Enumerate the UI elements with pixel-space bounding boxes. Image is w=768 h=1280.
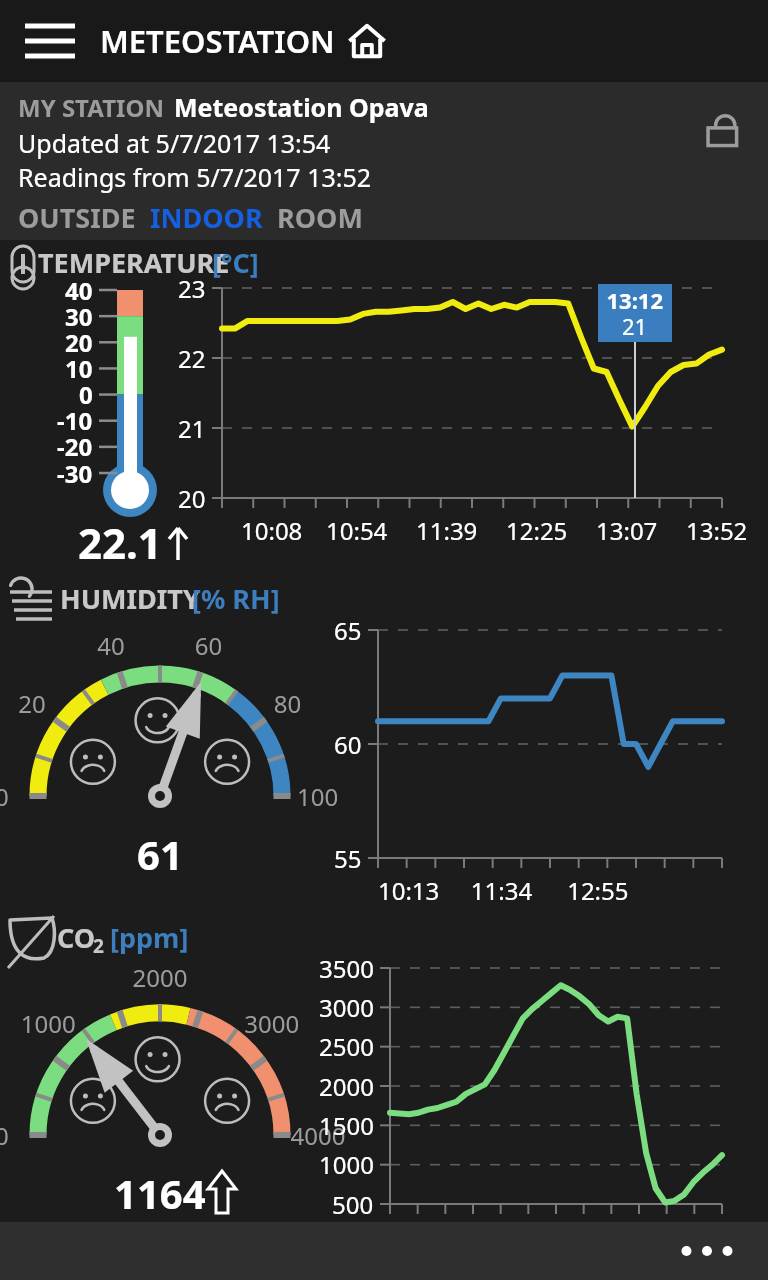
staticText: Updated at 5/7/2017 13:54 — [18, 126, 331, 160]
button[interactable]: ROOM — [277, 199, 363, 236]
button[interactable]: Menu — [0, 0, 100, 82]
staticText: Readings from 5/7/2017 13:52 — [18, 160, 372, 194]
staticText: OUTSIDE — [18, 199, 136, 236]
staticText: INDOOR — [150, 199, 263, 236]
staticText: METEOSTATION — [100, 20, 335, 62]
staticText: ROOM — [277, 199, 363, 236]
button[interactable]: Unlock — [694, 100, 754, 160]
staticText: Meteostation Opava — [174, 90, 429, 124]
button[interactable]: More options — [662, 1222, 752, 1280]
staticText: MY STATION — [18, 91, 164, 124]
button[interactable]: OUTSIDE — [18, 199, 136, 236]
button[interactable]: METEOSTATION — [100, 20, 387, 62]
button[interactable]: INDOOR — [150, 199, 263, 236]
